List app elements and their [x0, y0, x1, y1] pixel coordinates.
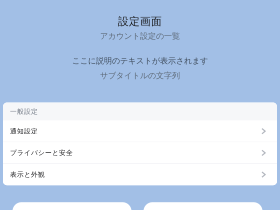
staticText: プライバシーと安全: [10, 149, 73, 157]
staticText: アカウント設定の一覧: [100, 31, 180, 41]
button[interactable]: 通知設定: [3, 121, 277, 142]
staticText: 通知設定: [10, 127, 38, 135]
staticText: サブタイトルの文字列: [100, 71, 180, 81]
staticText: 表示と外観: [10, 170, 45, 179]
button[interactable]: プライバシーと安全: [3, 142, 277, 163]
button[interactable]: 表示と外観: [3, 164, 277, 185]
button[interactable]: [12, 202, 131, 210]
staticText: ここに説明のテキストが表示されます: [72, 56, 208, 66]
staticText: 設定画面: [118, 15, 162, 28]
staticText: 一般設定: [10, 107, 38, 116]
button[interactable]: [143, 202, 262, 210]
